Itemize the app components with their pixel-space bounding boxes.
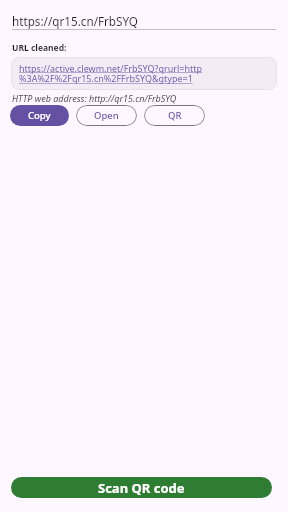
button[interactable]: https://active.clewm.net/FrbSYQ?qrurl=ht… [11, 57, 277, 90]
staticText: URL cleaned: [12, 42, 67, 54]
staticText: QR [168, 109, 182, 122]
staticText: https://active.clewm.net/FrbSYQ?qrurl=ht… [19, 62, 202, 85]
staticText: Scan QR code [98, 479, 185, 497]
staticText: Copy [28, 109, 51, 122]
button[interactable]: Open [76, 105, 137, 126]
staticText: Open [94, 109, 119, 122]
button[interactable]: https://qr15.cn/FrbSYQ [12, 13, 276, 30]
staticText: HTTP web address: http://qr15.cn/FrbSYQ [12, 92, 177, 104]
button[interactable]: Copy [10, 105, 69, 126]
button[interactable]: QR [144, 105, 205, 126]
button[interactable]: Scan QR code [11, 477, 272, 498]
staticText: https://qr15.cn/FrbSYQ [12, 13, 138, 29]
